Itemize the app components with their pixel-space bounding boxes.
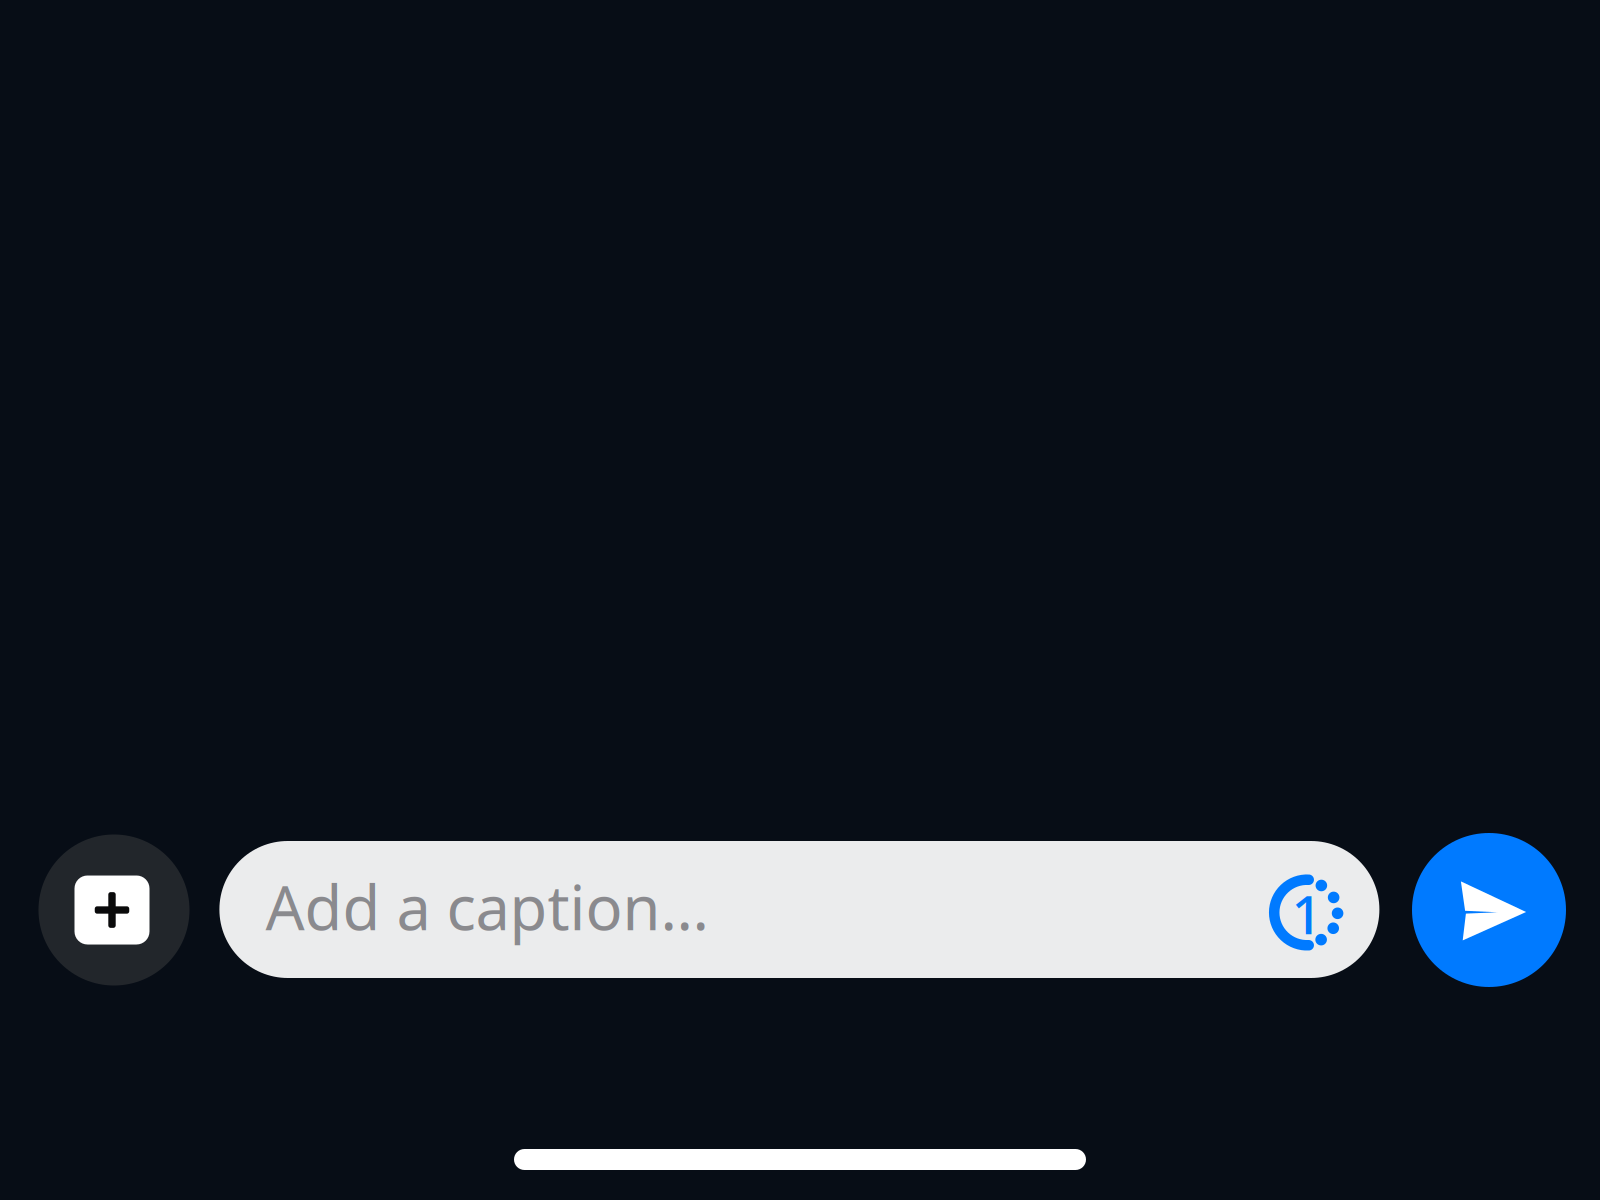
- staticText: 1: [1291, 878, 1322, 949]
- button[interactable]: Add a caption...: [219, 841, 1379, 978]
- staticText: Add a caption...: [265, 866, 708, 947]
- button[interactable]: Add media: [38, 834, 189, 985]
- button[interactable]: Send: [1412, 833, 1566, 987]
- button[interactable]: View once: [1265, 870, 1349, 954]
